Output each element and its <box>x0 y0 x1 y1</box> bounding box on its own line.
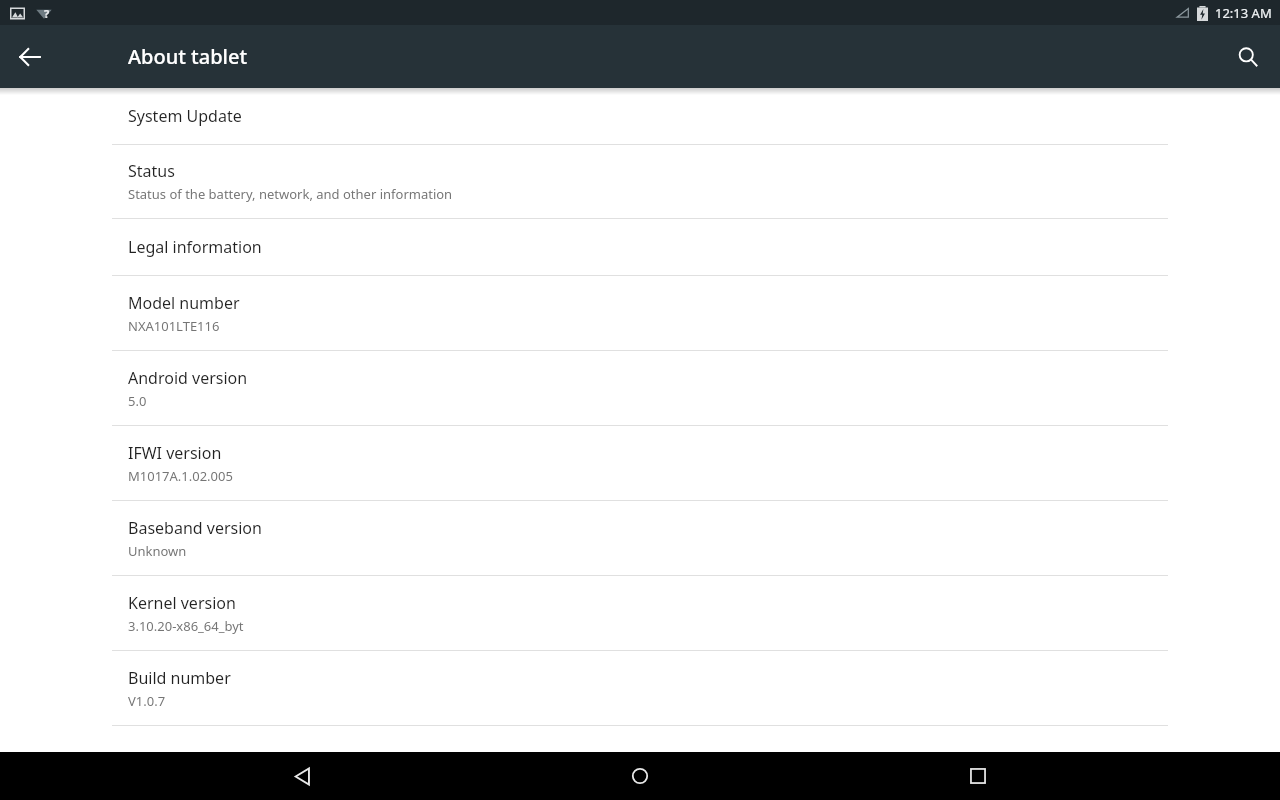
staticText: 3.10.20-x86_64_byt <box>128 617 244 635</box>
button[interactable]: Legal information <box>0 219 1280 275</box>
button[interactable]: Recent apps <box>942 752 1014 800</box>
staticText: Kernel version <box>128 592 236 614</box>
staticText: Legal information <box>128 236 262 258</box>
button[interactable]: Model number <box>0 276 1280 350</box>
staticText: Model number <box>128 292 240 314</box>
button[interactable]: Back <box>6 33 54 81</box>
staticText: IFWI version <box>128 442 222 464</box>
button[interactable]: Status <box>0 145 1280 218</box>
staticText: Unknown <box>128 542 187 560</box>
staticText: ? <box>44 6 50 21</box>
button[interactable]: System Update <box>0 88 1280 144</box>
button[interactable]: Baseband version <box>0 501 1280 575</box>
staticText: Status <box>128 160 175 182</box>
button[interactable]: Back <box>266 752 338 800</box>
staticText: Baseband version <box>128 517 262 539</box>
staticText: Status of the battery, network, and othe… <box>128 185 453 203</box>
button[interactable]: IFWI version <box>0 426 1280 500</box>
button[interactable]: Android version <box>0 351 1280 425</box>
staticText: Build number <box>128 667 231 689</box>
staticText: Android version <box>128 367 248 389</box>
staticText: NXA101LTE116 <box>128 317 220 335</box>
staticText: 5.0 <box>128 392 147 410</box>
button[interactable]: Build number <box>0 651 1280 725</box>
button[interactable]: Home <box>604 752 676 800</box>
staticText: System Update <box>128 105 242 127</box>
staticText: 12:13 AM <box>1215 4 1272 22</box>
staticText: M1017A.1.02.005 <box>128 467 233 485</box>
button[interactable]: Kernel version <box>0 576 1280 650</box>
staticText: About tablet <box>128 43 248 70</box>
staticText: V1.0.7 <box>128 692 166 710</box>
button[interactable]: Search <box>1224 33 1272 81</box>
